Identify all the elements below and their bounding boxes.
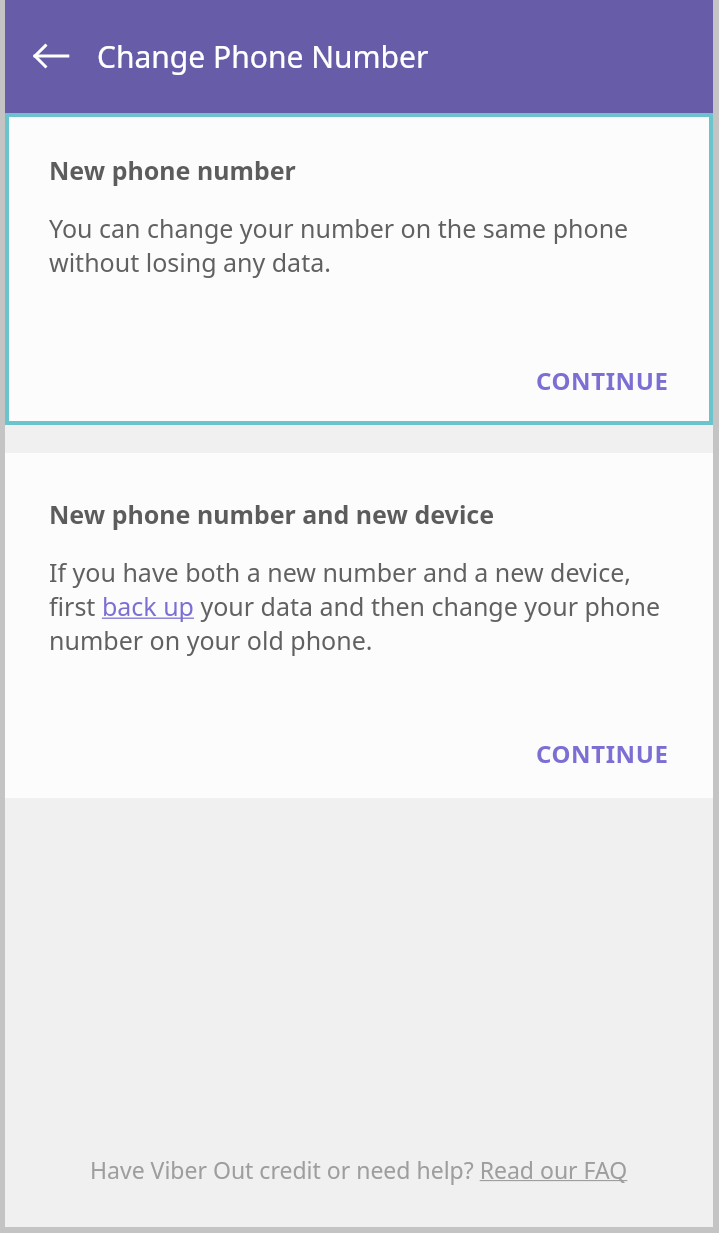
button[interactable]: Back bbox=[19, 24, 83, 88]
staticText: Change Phone Number bbox=[97, 36, 429, 77]
staticText: CONTINUE bbox=[536, 737, 669, 770]
staticText: CONTINUE bbox=[536, 364, 669, 397]
staticText: You can change your number on the same p… bbox=[49, 211, 675, 279]
staticText: Have Viber Out credit or need help? Read… bbox=[90, 1154, 628, 1185]
button[interactable]: Have Viber Out credit or need help? Read… bbox=[82, 1150, 636, 1189]
staticText: New phone number bbox=[49, 153, 296, 187]
button[interactable]: New phone number bbox=[5, 113, 713, 425]
button[interactable]: CONTINUE bbox=[530, 731, 675, 776]
staticText: New phone number and new device bbox=[49, 497, 495, 531]
button[interactable]: New phone number and new device bbox=[5, 453, 713, 798]
button[interactable]: CONTINUE bbox=[530, 358, 675, 403]
staticText: If you have both a new number and a new … bbox=[49, 555, 675, 657]
